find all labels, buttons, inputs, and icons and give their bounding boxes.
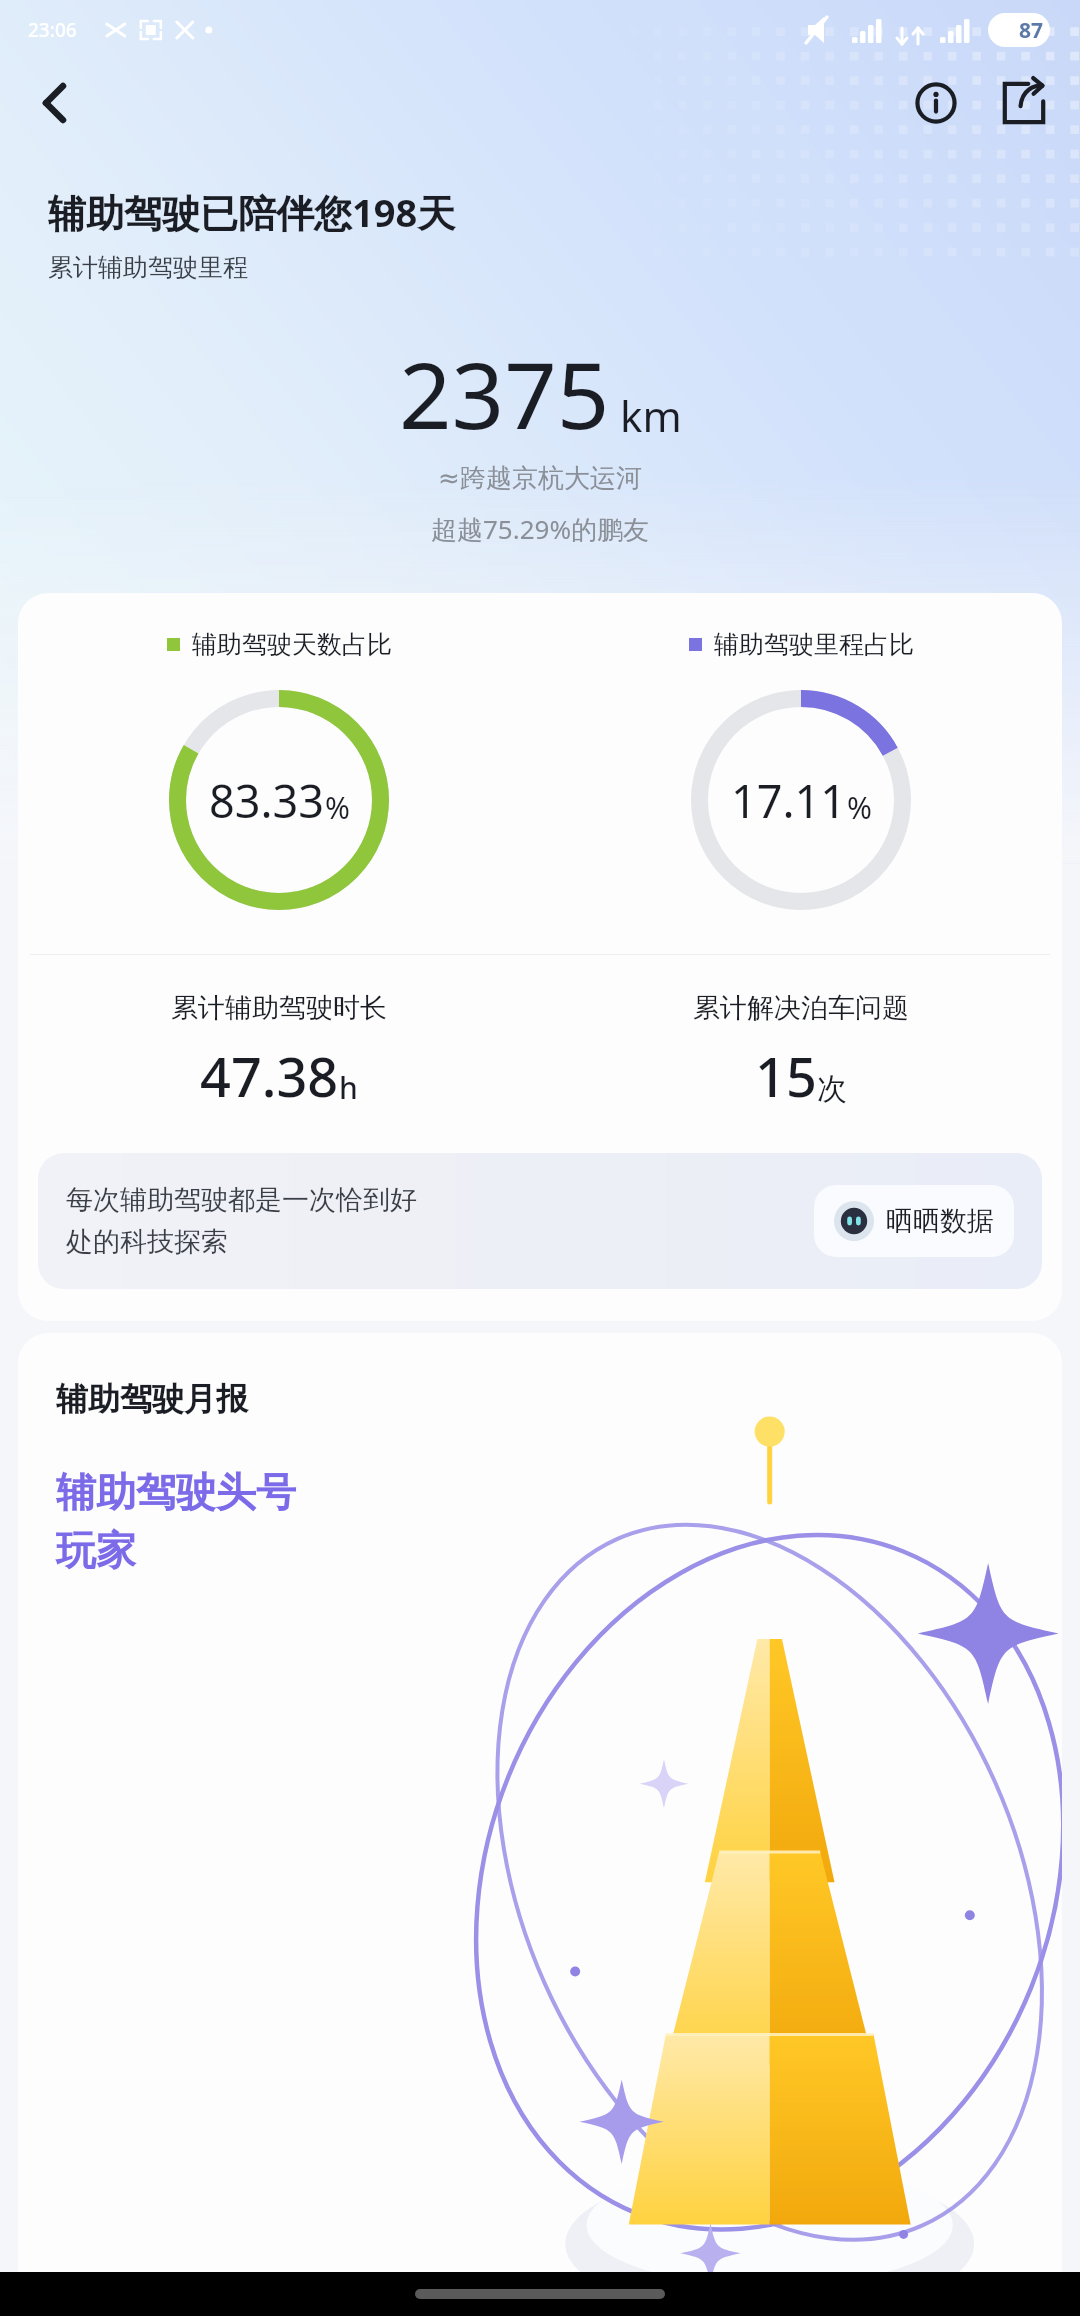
staticText: 2375	[399, 331, 610, 456]
button[interactable]: Back	[22, 71, 86, 135]
staticText: 晒晒数据	[886, 1204, 994, 1238]
button[interactable]: Share	[992, 71, 1056, 135]
staticText: %	[847, 787, 872, 828]
staticText: km	[620, 387, 682, 444]
staticText: ≈跨越京杭大运河	[0, 462, 1080, 495]
staticText: 超越75.29%的鹏友	[0, 511, 1080, 547]
staticText: 辅助驾驶里程占比	[714, 629, 914, 660]
staticText: 辅助驾驶天数占比	[192, 629, 392, 660]
staticText: 玩家	[56, 1525, 136, 1575]
staticText: 47.38	[200, 1039, 339, 1113]
staticText: 辅助驾驶已陪伴您198天	[48, 186, 456, 238]
staticText: 累计辅助驾驶时长	[171, 991, 387, 1025]
button[interactable]: 辅助驾驶月报	[18, 1333, 1062, 2272]
staticText: 每次辅助驾驶都是一次恰到好	[66, 1183, 417, 1217]
staticText: h	[339, 1067, 358, 1108]
staticText: %	[325, 787, 350, 828]
staticText: 23:06	[28, 17, 77, 43]
button[interactable]: Info	[904, 71, 968, 135]
staticText: 次	[817, 1070, 847, 1108]
staticText: 累计解决泊车问题	[693, 991, 909, 1025]
staticText: 累计辅助驾驶里程	[48, 252, 248, 283]
staticText: 87	[1019, 16, 1044, 45]
staticText: 辅助驾驶月报	[56, 1379, 248, 1419]
staticText: 辅助驾驶头号	[56, 1467, 296, 1517]
staticText: 83.33	[209, 770, 325, 831]
staticText: 处的科技探索	[66, 1225, 228, 1259]
button[interactable]: 晒晒数据	[814, 1185, 1014, 1257]
staticText: 15	[755, 1039, 817, 1113]
staticText: 17.11	[731, 770, 847, 831]
